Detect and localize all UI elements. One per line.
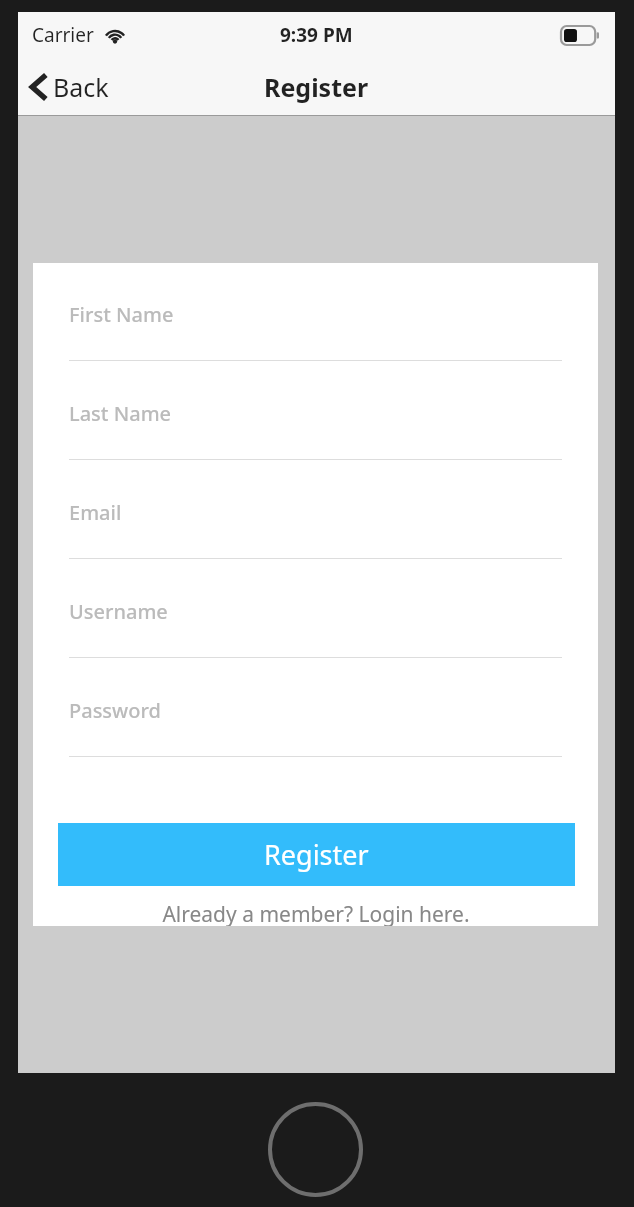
button[interactable]: First Name xyxy=(33,299,598,398)
button[interactable]: Register xyxy=(58,823,575,886)
button[interactable]: Home xyxy=(268,1102,363,1197)
staticText: Carrier xyxy=(32,22,94,48)
button[interactable]: Already a member? Login here. xyxy=(33,900,598,926)
staticText: Register xyxy=(264,70,369,104)
button[interactable]: Password xyxy=(33,695,598,794)
staticText: Password xyxy=(69,697,161,724)
button[interactable]: Last Name xyxy=(33,398,598,497)
staticText: Username xyxy=(69,598,168,625)
staticText: First Name xyxy=(69,301,174,328)
staticText: Already a member? Login here. xyxy=(162,900,470,926)
staticText: Back xyxy=(53,70,109,104)
button[interactable]: Username xyxy=(33,596,598,695)
staticText: Last Name xyxy=(69,400,172,427)
staticText: Register xyxy=(264,836,369,873)
staticText: 9:39 PM xyxy=(280,22,353,48)
button[interactable]: Email xyxy=(33,497,598,596)
button[interactable]: Back xyxy=(30,70,109,104)
staticText: Email xyxy=(69,499,122,526)
